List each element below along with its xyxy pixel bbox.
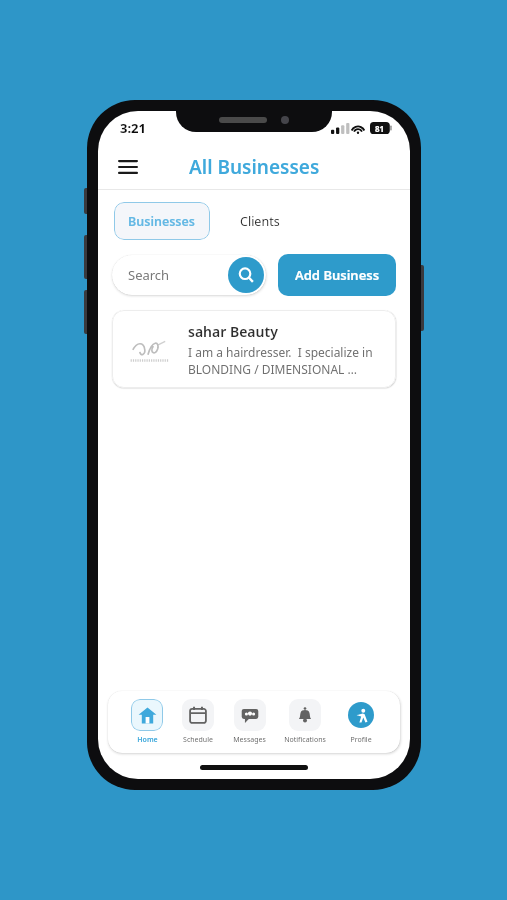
staticText: Businesses bbox=[128, 213, 196, 230]
staticText: I am a hairdresser. I specialize in bbox=[188, 344, 373, 360]
staticText: Clients bbox=[240, 213, 280, 230]
staticText: All Businesses bbox=[189, 154, 320, 180]
staticText: Schedule bbox=[183, 735, 213, 745]
staticText: Messages bbox=[233, 735, 266, 745]
staticText: Home bbox=[137, 735, 158, 745]
staticText: 81 bbox=[375, 123, 385, 134]
button[interactable]: Profile bbox=[343, 691, 379, 753]
staticText: Search bbox=[128, 266, 170, 284]
staticText: Add Business bbox=[295, 266, 380, 284]
staticText: sahar Beauty bbox=[188, 322, 278, 341]
button[interactable]: Search bbox=[112, 255, 266, 295]
staticText: BLONDING / DIMENSIONAL … bbox=[188, 361, 357, 377]
staticText: Profile bbox=[350, 735, 372, 745]
button[interactable]: Add Business bbox=[278, 254, 396, 296]
button[interactable]: Schedule bbox=[180, 691, 216, 753]
button[interactable]: Menu bbox=[108, 147, 148, 187]
button[interactable]: Search bbox=[228, 257, 264, 293]
button[interactable]: Home bbox=[129, 691, 165, 753]
staticText: 3:21 bbox=[120, 119, 146, 137]
button[interactable]: Businesses bbox=[114, 202, 210, 240]
staticText: Notifications bbox=[284, 735, 326, 745]
button[interactable]: Messages bbox=[231, 691, 268, 753]
button[interactable]: Clients bbox=[210, 202, 310, 240]
button[interactable]: sahar Beauty bbox=[112, 310, 396, 388]
button[interactable]: Notifications bbox=[282, 691, 328, 753]
